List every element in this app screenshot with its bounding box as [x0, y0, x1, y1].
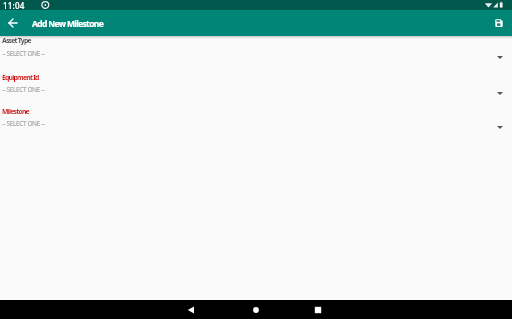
- button[interactable]: -- SELECT ONE --: [0, 117, 512, 129]
- staticText: Asset Type: [2, 36, 31, 45]
- staticText: -- SELECT ONE --: [2, 85, 45, 94]
- button[interactable]: -- SELECT ONE --: [0, 83, 512, 95]
- staticText: -- SELECT ONE --: [2, 119, 45, 128]
- button[interactable]: [181, 300, 200, 319]
- staticText: Equipment Id: [2, 73, 39, 82]
- button[interactable]: -- SELECT ONE --: [0, 47, 512, 59]
- button[interactable]: [486, 10, 512, 36]
- staticText: 11:04: [3, 0, 25, 10]
- staticText: -- SELECT ONE --: [2, 49, 45, 58]
- staticText: Add New Milestone: [32, 18, 104, 30]
- button[interactable]: [308, 300, 327, 319]
- button[interactable]: [246, 300, 265, 319]
- staticText: Milestone: [2, 107, 29, 116]
- button[interactable]: [0, 10, 26, 36]
